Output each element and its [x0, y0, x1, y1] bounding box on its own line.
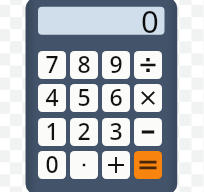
- button[interactable]: 0: [38, 151, 66, 179]
- button[interactable]: 3: [102, 118, 130, 146]
- button[interactable]: 6: [102, 84, 130, 112]
- button[interactable]: Decimal point: [70, 151, 98, 179]
- button[interactable]: Add: [102, 151, 130, 179]
- button[interactable]: 5: [70, 84, 98, 112]
- staticText: 7: [45, 51, 59, 76]
- button[interactable]: 8: [70, 51, 98, 79]
- button[interactable]: Equals: [134, 151, 162, 179]
- staticText: 8: [77, 51, 91, 76]
- staticText: 5: [77, 84, 91, 109]
- staticText: 3: [109, 118, 123, 143]
- button[interactable]: Subtract: [134, 118, 162, 146]
- button[interactable]: 1: [38, 118, 66, 146]
- button[interactable]: 4: [38, 84, 66, 112]
- button[interactable]: Divide: [134, 51, 162, 79]
- button[interactable]: Multiply: [134, 84, 162, 112]
- button[interactable]: 9: [102, 51, 130, 79]
- staticText: 4: [45, 84, 59, 109]
- button[interactable]: 2: [70, 118, 98, 146]
- button[interactable]: 7: [38, 51, 66, 79]
- staticText: 1: [45, 118, 59, 143]
- staticText: 0: [141, 0, 159, 42]
- staticText: 0: [45, 151, 59, 176]
- staticText: 9: [109, 51, 123, 76]
- staticText: 2: [77, 118, 91, 143]
- staticText: 6: [109, 84, 123, 109]
